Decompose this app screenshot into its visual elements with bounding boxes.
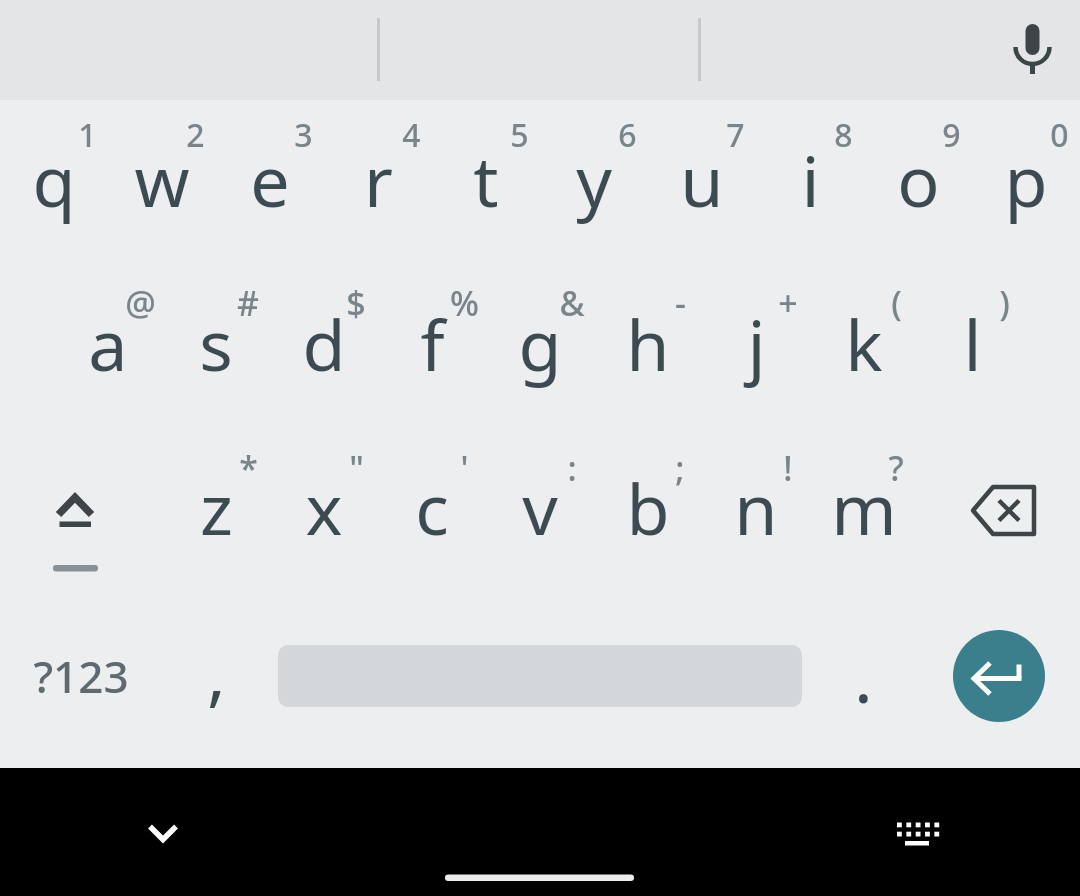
button[interactable]: , [146,601,286,741]
staticText: 8 [834,113,853,157]
button[interactable]: p [956,109,1080,249]
staticText: x [305,460,343,555]
button[interactable]: w [92,109,232,249]
button[interactable]: u [632,109,772,249]
button[interactable]: k [794,273,934,413]
staticText: m [831,460,897,555]
staticText: 2 [186,113,205,157]
button[interactable]: o [848,109,988,249]
staticText: c [415,460,449,555]
staticText: j [747,296,766,391]
button[interactable]: g [470,273,610,413]
staticText: f [420,296,445,391]
button[interactable]: e [200,109,340,249]
button[interactable] [953,630,1045,722]
button[interactable]: d [254,273,394,413]
staticText: k [845,296,883,391]
button[interactable]: s [146,273,286,413]
button[interactable]: l [902,273,1042,413]
staticText: s [199,296,233,391]
button[interactable]: . [793,605,933,745]
staticText: 0 [1050,113,1069,157]
staticText: @ [125,280,156,326]
button[interactable]: q [0,109,124,249]
staticText: p [1004,132,1048,227]
staticText: n [734,460,778,555]
staticText: $ [346,280,366,326]
staticText: 7 [726,113,745,157]
staticText: ) [999,280,1010,326]
staticText: u [680,132,724,227]
button[interactable] [0,430,162,594]
staticText: 4 [402,113,421,157]
button[interactable]: m [794,437,934,577]
button[interactable]: a [38,273,178,413]
staticText: ' [460,445,469,491]
button[interactable] [918,430,1080,594]
staticText: 9 [942,113,961,157]
button[interactable]: v [470,437,610,577]
button[interactable]: i [740,109,880,249]
staticText: q [32,132,76,227]
button[interactable]: ?123 [11,606,151,746]
staticText: + [778,280,798,326]
staticText: o [897,132,940,227]
button[interactable]: h [578,273,718,413]
button[interactable]: b [578,437,718,577]
staticText: d [302,296,346,391]
staticText: z [200,460,233,555]
staticText: ! [783,445,793,491]
staticText: l [963,296,982,391]
button[interactable]: x [254,437,394,577]
button[interactable]: n [686,437,826,577]
staticText: : [567,445,577,491]
staticText: & [559,280,585,326]
staticText: * [239,445,258,491]
button[interactable]: z [146,437,286,577]
staticText: ? [888,445,904,491]
staticText: a [88,296,128,391]
staticText: r [364,132,393,227]
staticText: 1 [78,113,97,157]
staticText: e [250,132,290,227]
staticText: t [473,132,499,227]
button[interactable]: r [308,109,448,249]
staticText: ; [675,445,685,491]
staticText: y [576,132,612,227]
staticText: . [854,628,873,723]
staticText: ?123 [33,646,129,706]
staticText: g [518,296,562,391]
staticText: % [450,280,479,326]
staticText: v [522,460,558,555]
staticText: h [626,296,670,391]
staticText: ( [891,280,902,326]
staticText: i [801,132,820,227]
staticText: 5 [510,113,529,157]
button[interactable] [874,790,960,876]
staticText: b [626,460,670,555]
button[interactable]: y [524,109,664,249]
button[interactable]: c [362,437,502,577]
button[interactable] [990,8,1074,92]
button[interactable] [120,790,206,876]
button[interactable]: t [416,109,556,249]
staticText: # [237,280,259,326]
staticText: 6 [618,113,637,157]
staticText: 3 [294,113,313,157]
staticText: - [675,280,686,326]
staticText: w [134,132,190,227]
staticText: , [207,624,226,719]
button[interactable]: f [362,273,502,413]
button[interactable]: j [686,273,826,413]
staticText: " [349,445,364,491]
